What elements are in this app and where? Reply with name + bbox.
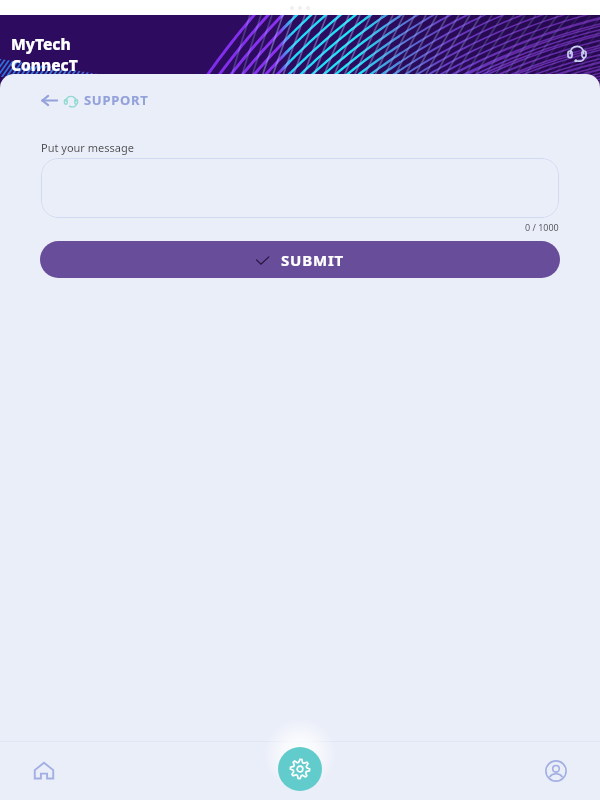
- button[interactable]: Settings: [278, 747, 322, 791]
- staticText: SUBMIT: [281, 250, 345, 270]
- staticText: MyTech: [11, 33, 71, 54]
- button[interactable]: SUBMIT: [40, 241, 560, 278]
- staticText: ConnecT: [11, 54, 78, 75]
- staticText: Put your message: [41, 140, 134, 155]
- button[interactable]: Support: [565, 40, 589, 64]
- staticText: SUPPORT: [84, 91, 149, 109]
- button[interactable]: [41, 158, 559, 218]
- staticText: 0 / 1000: [525, 221, 559, 233]
- button[interactable]: Home: [0, 741, 88, 800]
- button[interactable]: Profile: [512, 741, 600, 800]
- button[interactable]: Back: [40, 91, 58, 109]
